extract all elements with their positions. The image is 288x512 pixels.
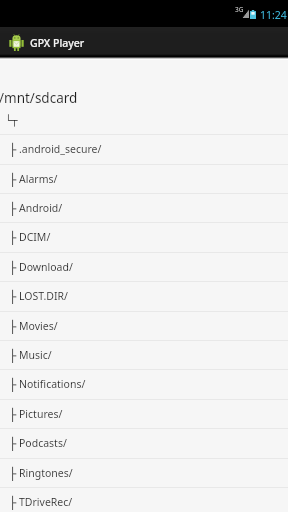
staticText: ├ xyxy=(9,378,17,392)
button[interactable]: ├ xyxy=(0,311,288,340)
button[interactable]: ├ xyxy=(0,164,288,193)
button[interactable]: ├ xyxy=(0,399,288,428)
staticText: Podcasts/ xyxy=(19,436,67,450)
button[interactable]: ├ xyxy=(0,193,288,222)
staticText: ├ xyxy=(9,496,17,510)
staticText: ├ xyxy=(9,202,17,216)
staticText: Download/ xyxy=(19,260,73,274)
staticText: DCIM/ xyxy=(19,230,51,244)
button[interactable]: ├ xyxy=(0,252,288,281)
staticText: Movies/ xyxy=(19,319,58,333)
other: Battery xyxy=(250,10,256,19)
staticText: ├ xyxy=(9,173,17,187)
staticText: └┬ xyxy=(5,114,18,126)
staticText: ├ xyxy=(9,467,17,481)
staticText: ├ xyxy=(9,437,17,451)
staticText: Music/ xyxy=(19,348,52,362)
staticText: Pictures/ xyxy=(19,407,63,421)
button[interactable]: ├ xyxy=(0,134,288,163)
button[interactable]: GPX Player xyxy=(0,27,288,57)
other: Mobile signal xyxy=(242,9,249,18)
staticText: GPX Player xyxy=(30,36,85,50)
staticText: .android_secure/ xyxy=(19,142,102,156)
button[interactable]: ├ xyxy=(0,222,288,251)
button[interactable]: ├ xyxy=(0,487,288,512)
staticText: /mnt/sdcard xyxy=(0,89,78,107)
staticText: Ringtones/ xyxy=(19,466,73,480)
staticText: ├ xyxy=(9,408,17,422)
button[interactable]: ├ xyxy=(0,281,288,310)
staticText: ├ xyxy=(9,261,17,275)
staticText: ├ xyxy=(9,231,17,245)
button[interactable]: ├ xyxy=(0,340,288,369)
staticText: ├ xyxy=(9,320,17,334)
button[interactable]: ├ xyxy=(0,458,288,487)
staticText: LOST.DIR/ xyxy=(19,289,68,303)
staticText: ├ xyxy=(9,290,17,304)
staticText: 3G xyxy=(235,5,244,14)
staticText: Alarms/ xyxy=(19,172,58,186)
staticText: Android/ xyxy=(19,201,63,215)
staticText: ├ xyxy=(9,349,17,363)
staticText: Notifications/ xyxy=(19,377,86,391)
button[interactable]: ├ xyxy=(0,369,288,398)
staticText: TDriveRec/ xyxy=(19,495,73,509)
button[interactable]: ├ xyxy=(0,428,288,457)
staticText: ├ xyxy=(9,143,17,157)
staticText: 11:24 xyxy=(260,8,287,22)
